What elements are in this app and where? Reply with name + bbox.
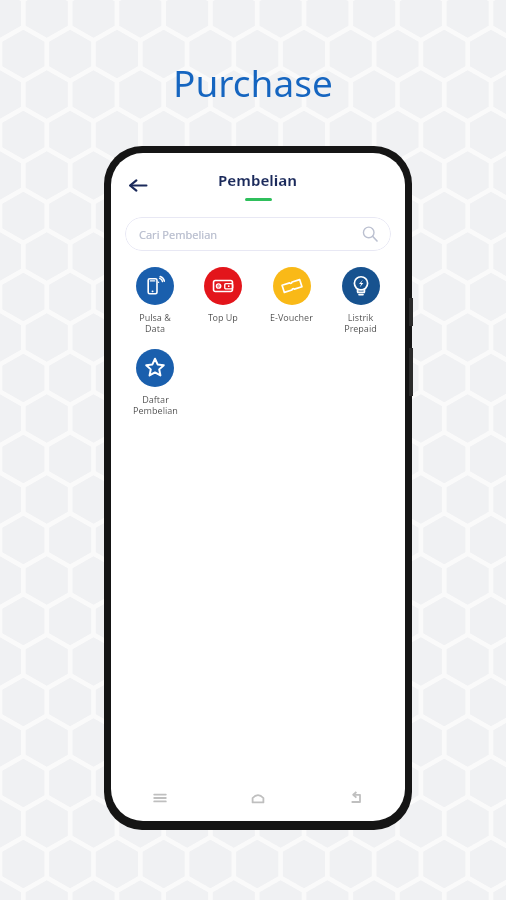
button[interactable]: E-Voucher bbox=[257, 265, 326, 325]
staticText: Listrik Prepaid bbox=[344, 311, 377, 335]
staticText: Pembelian bbox=[218, 170, 298, 190]
button[interactable]: Back bbox=[119, 167, 155, 203]
staticText: Top Up bbox=[208, 311, 238, 323]
staticText: Pulsa & Data bbox=[139, 311, 171, 335]
staticText: E-Voucher bbox=[270, 311, 313, 323]
button[interactable]: Back bbox=[307, 775, 405, 821]
button[interactable]: Listrik Prepaid bbox=[326, 265, 395, 337]
button[interactable]: Cari Pembelian bbox=[125, 217, 391, 251]
staticText: Daftar Pembelian bbox=[133, 393, 178, 417]
staticText: Purchase bbox=[173, 57, 333, 107]
button[interactable]: Top Up bbox=[189, 265, 257, 325]
button[interactable]: Home bbox=[209, 775, 307, 821]
button[interactable]: Recent apps bbox=[111, 775, 209, 821]
button[interactable]: Daftar Pembelian bbox=[121, 347, 189, 419]
button[interactable]: Pulsa & Data bbox=[121, 265, 189, 337]
staticText: Cari Pembelian bbox=[139, 227, 218, 242]
